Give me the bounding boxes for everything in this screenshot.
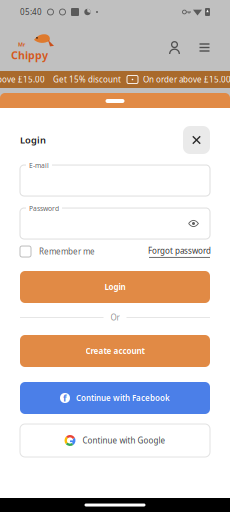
button[interactable]: Menu xyxy=(194,36,215,59)
button[interactable]: f xyxy=(20,382,210,414)
staticText: Mr xyxy=(18,41,25,48)
staticText: E-mail xyxy=(29,161,49,170)
staticText: Forgot password xyxy=(148,245,211,256)
button[interactable]: Close xyxy=(183,126,210,154)
staticText: Continue with Facebook xyxy=(76,393,170,403)
staticText: Chippy xyxy=(11,48,48,62)
staticText: Get 15% discount xyxy=(53,74,121,85)
button[interactable]: Continue with Google xyxy=(20,424,210,457)
staticText: above £15.00 xyxy=(0,74,45,85)
button[interactable]: Account xyxy=(164,36,185,59)
button[interactable]: Remember me xyxy=(20,245,95,258)
button[interactable]: Login xyxy=(20,271,210,303)
button[interactable]: Forgot password xyxy=(149,245,210,258)
staticText: f xyxy=(63,392,67,404)
staticText: Remember me xyxy=(39,246,95,257)
staticText: Or xyxy=(110,312,119,323)
staticText: Continue with Google xyxy=(82,435,165,446)
staticText: Login xyxy=(104,282,125,292)
staticText: 05:40 xyxy=(20,7,42,17)
staticText: Password xyxy=(29,204,59,213)
staticText: On order above £15.00 xyxy=(143,74,230,85)
staticText: Create account xyxy=(85,346,144,356)
staticText: Login xyxy=(20,134,46,146)
button[interactable]: Create account xyxy=(20,335,210,367)
